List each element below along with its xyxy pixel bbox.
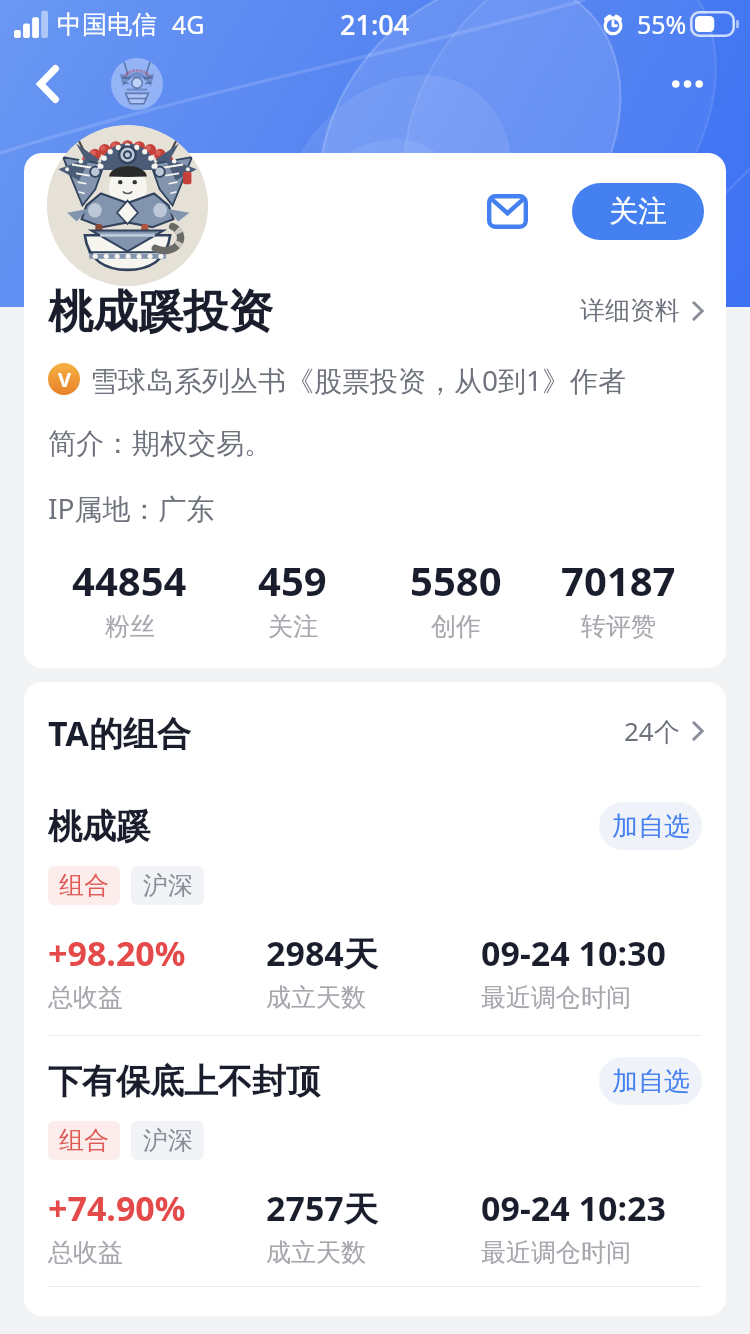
button[interactable]: Back [14, 50, 82, 118]
staticText: 沪深 [143, 870, 193, 901]
staticText: 关注 [268, 611, 318, 642]
staticText: 总收益 [48, 982, 123, 1013]
staticText: 5580 [410, 553, 502, 607]
button[interactable]: 70187 [537, 553, 700, 642]
staticText: +98.20% [48, 930, 186, 976]
button[interactable]: Message [472, 182, 542, 240]
staticText: 总收益 [48, 1237, 123, 1268]
staticText: 加自选 [612, 810, 690, 843]
staticText: 雪球岛系列丛书《股票投资，从0到1》作者 [90, 361, 627, 397]
staticText: 详细资料 [580, 295, 680, 326]
staticText: 下有保底上不封顶 [48, 1060, 320, 1103]
staticText: 09-24 10:23 [481, 1185, 666, 1231]
staticText: 2757天 [266, 1185, 378, 1231]
button[interactable]: 459 [211, 553, 374, 642]
button[interactable]: More options [655, 52, 719, 116]
staticText: 最近调仓时间 [481, 982, 631, 1013]
staticText: 关注 [609, 193, 667, 230]
button[interactable]: 加自选 [599, 1057, 702, 1105]
button[interactable]: 44854 [48, 553, 211, 642]
staticText: 成立天数 [266, 982, 366, 1013]
button[interactable]: 5580 [374, 553, 537, 642]
staticText: 简介：期权交易。 [48, 426, 272, 460]
staticText: TA的组合 [48, 710, 191, 752]
staticText: 粉丝 [105, 611, 155, 642]
button[interactable]: 加自选 [599, 802, 702, 850]
staticText: 24个 [624, 713, 680, 749]
staticText: 转评赞 [581, 611, 656, 642]
staticText: 创作 [431, 611, 481, 642]
staticText: 4G [172, 7, 205, 41]
staticText: 459 [258, 553, 327, 607]
staticText: 21:04 [340, 6, 410, 43]
staticText: 2984天 [266, 930, 378, 976]
staticText: 成立天数 [266, 1237, 366, 1268]
staticText: 70187 [561, 553, 676, 607]
staticText: 最近调仓时间 [481, 1237, 631, 1268]
staticText: 桃成蹊投资 [48, 284, 273, 336]
staticText: 沪深 [143, 1125, 193, 1156]
staticText: 44854 [72, 553, 187, 607]
staticText: 加自选 [612, 1065, 690, 1098]
button[interactable]: 关注 [572, 183, 704, 240]
staticText: 组合 [59, 870, 109, 901]
staticText: 55% [637, 7, 687, 41]
staticText: 组合 [59, 1125, 109, 1156]
staticText: 桃成蹊 [48, 805, 150, 848]
staticText: IP属地：广东 [48, 489, 215, 523]
staticText: +74.90% [48, 1185, 186, 1231]
staticText: 中国电信 [57, 9, 157, 40]
button[interactable]: 详细资料 [580, 295, 704, 326]
button[interactable]: 24个 [624, 713, 704, 749]
staticText: V [58, 366, 71, 393]
staticText: 09-24 10:30 [481, 930, 666, 976]
